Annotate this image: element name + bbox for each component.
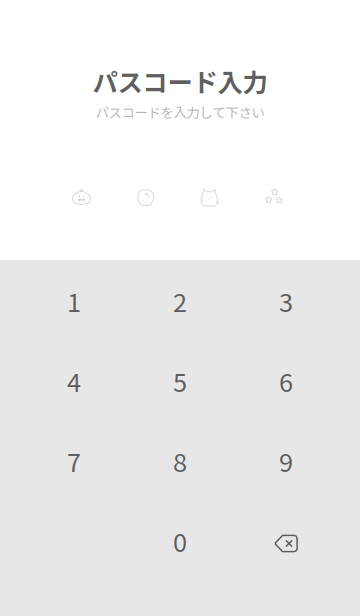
staticText: パスコード入力 (92, 63, 267, 99)
staticText: 8 (173, 443, 187, 479)
staticText: 0 (173, 523, 187, 559)
button[interactable]: 8 (127, 421, 233, 501)
button[interactable]: 6 (233, 341, 339, 421)
staticText: 2 (173, 283, 187, 319)
button[interactable]: 0 (127, 501, 233, 581)
button[interactable]: 5 (127, 341, 233, 421)
staticText: 9 (279, 443, 293, 479)
button[interactable]: 1 (21, 261, 127, 341)
button[interactable]: 7 (21, 421, 127, 501)
staticText: 1 (67, 283, 81, 319)
button[interactable]: 3 (233, 261, 339, 341)
staticText: 4 (67, 363, 81, 399)
staticText: 6 (279, 363, 293, 399)
button[interactable]: Delete (233, 501, 339, 581)
button[interactable]: 2 (127, 261, 233, 341)
staticText: 3 (279, 283, 293, 319)
staticText: 5 (173, 363, 187, 399)
staticText: パスコードを入力して下さい (95, 102, 264, 122)
staticText: 7 (67, 443, 81, 479)
button[interactable]: 4 (21, 341, 127, 421)
button[interactable]: 9 (233, 421, 339, 501)
